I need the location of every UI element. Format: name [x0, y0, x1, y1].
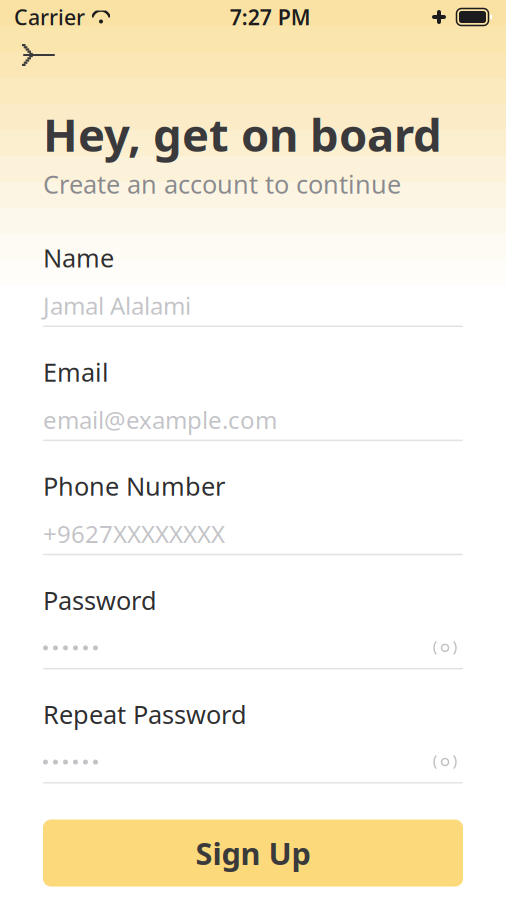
staticText: +9627XXXXXXXX [43, 518, 225, 550]
button[interactable]: Show password [427, 634, 463, 662]
staticText: Carrier [14, 3, 85, 31]
staticText: Create an account to continue [43, 167, 401, 201]
staticText: Email [43, 355, 109, 389]
button[interactable]: Sign Up [43, 819, 463, 886]
button[interactable]: Back [6, 32, 72, 78]
staticText: Sign Up [195, 833, 310, 873]
staticText: Password [43, 583, 157, 617]
staticText: Name [43, 241, 114, 274]
staticText: Hey, get on board [43, 104, 442, 164]
staticText: Phone Number [43, 469, 225, 503]
staticText: email@example.com [43, 404, 277, 436]
staticText: Jamal Alalami [43, 289, 191, 321]
button[interactable]: Show password [427, 748, 463, 776]
staticText: Repeat Password [43, 697, 247, 731]
staticText: 7:27 PM [230, 3, 311, 31]
